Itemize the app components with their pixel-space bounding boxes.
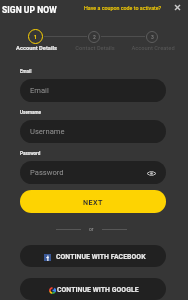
staticText: CONTINUE WITH GOOGLE: [57, 286, 139, 294]
button[interactable]: Username: [20, 120, 166, 143]
staticText: Have a coupon code to activate?: [84, 5, 162, 11]
staticText: Password: [30, 168, 64, 177]
staticText: 2: [93, 34, 96, 40]
staticText: Username: [30, 127, 65, 136]
button[interactable]: CONTINUE WITH GOOGLE: [20, 278, 166, 300]
button[interactable]: Close: [169, 0, 185, 15]
button[interactable]: CONTINUE WITH FACEBOOK: [20, 245, 166, 267]
button[interactable]: 3: [121, 25, 183, 53]
staticText: 3: [151, 34, 154, 40]
staticText: Password: [20, 151, 41, 156]
button[interactable]: Show password: [145, 167, 157, 179]
button[interactable]: 1: [4, 25, 66, 53]
button[interactable]: Email: [20, 79, 166, 102]
staticText: NEXT: [83, 198, 103, 206]
staticText: Account Details: [16, 45, 57, 52]
button[interactable]: Have a coupon code to activate?: [84, 5, 162, 11]
staticText: 1: [34, 34, 37, 40]
staticText: Username: [20, 110, 42, 115]
button[interactable]: NEXT: [20, 190, 166, 213]
button[interactable]: SIGN UP NOW: [1, 5, 58, 15]
staticText: or: [89, 226, 94, 232]
staticText: Account Created: [131, 45, 175, 52]
staticText: SIGN UP NOW: [2, 5, 57, 15]
staticText: Email: [30, 86, 49, 95]
staticText: Email: [20, 69, 32, 74]
staticText: CONTINUE WITH FACEBOOK: [56, 253, 146, 261]
button[interactable]: 2: [63, 25, 125, 53]
button[interactable]: Password: [20, 161, 166, 184]
staticText: Contact Details: [75, 45, 115, 52]
